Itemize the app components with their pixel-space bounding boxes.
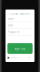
button[interactable]: Sign up — [7, 43, 33, 54]
staticText: Name — [7, 17, 14, 20]
button[interactable]: Log in — [26, 57, 30, 59]
staticText: Remember me — [9, 57, 19, 59]
staticText: Password — [7, 30, 19, 34]
staticText: Create account — [10, 12, 30, 15]
staticText: Sign up — [14, 47, 25, 50]
staticText: Log in — [26, 57, 30, 59]
staticText: Email — [7, 24, 13, 27]
